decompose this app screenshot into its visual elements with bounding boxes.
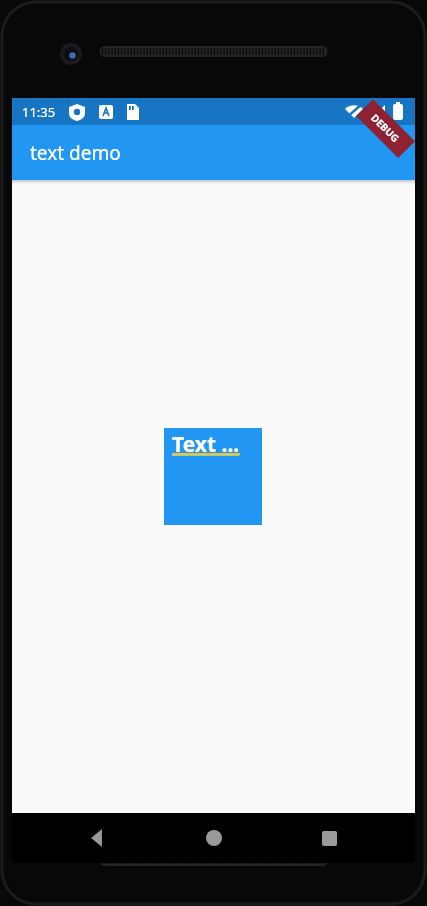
staticText: 11:35: [22, 103, 56, 121]
staticText: DEBUG: [368, 111, 403, 145]
staticText: Text ...: [172, 430, 240, 459]
button[interactable]: Back: [68, 813, 128, 863]
button[interactable]: Home: [184, 813, 244, 863]
button[interactable]: Recent apps: [299, 813, 359, 863]
staticText: text demo: [30, 140, 121, 166]
button[interactable]: Text ...: [164, 428, 262, 525]
